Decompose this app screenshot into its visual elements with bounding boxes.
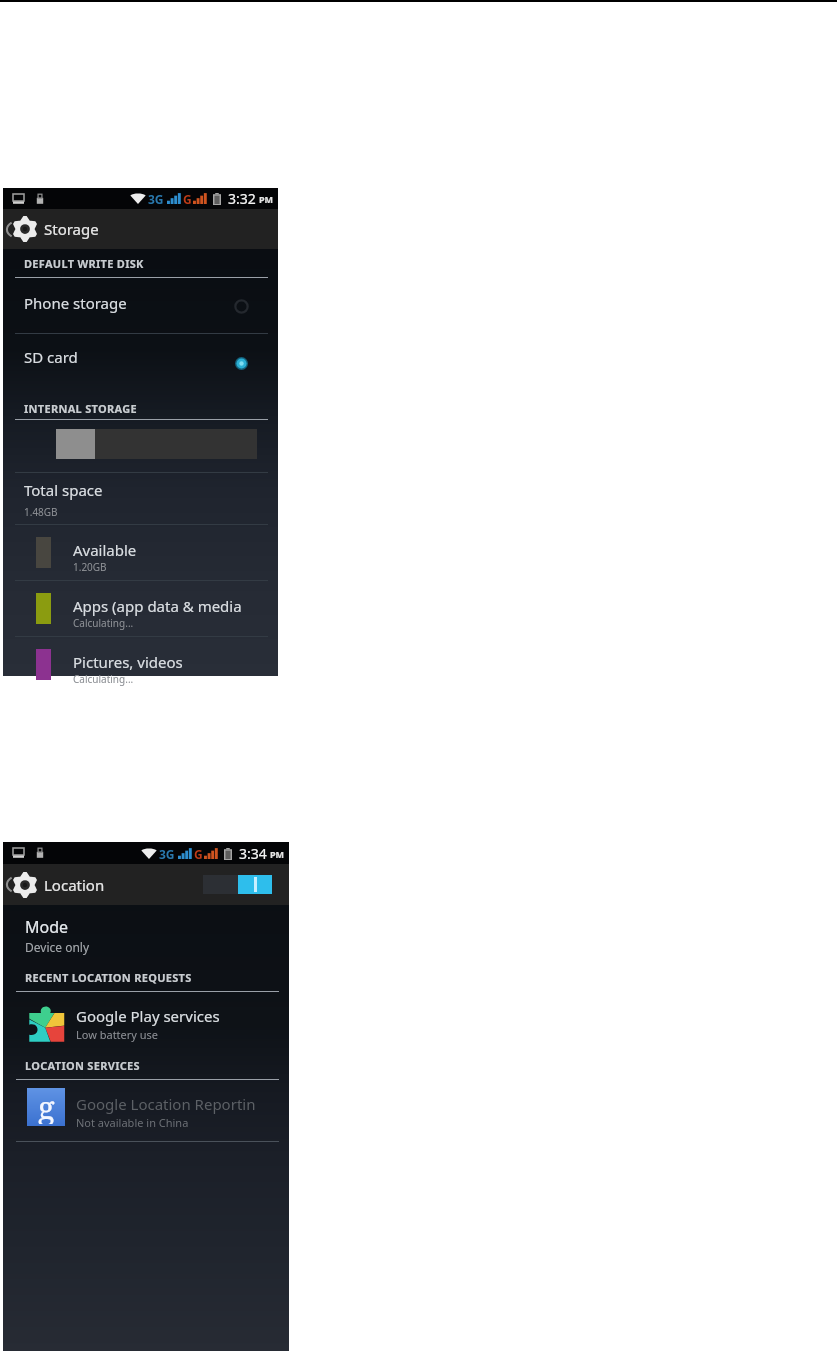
staticText: Device only bbox=[25, 939, 90, 955]
button[interactable]: Mode bbox=[3, 912, 289, 960]
staticText: LOCATION SERVICES bbox=[25, 1058, 140, 1073]
button[interactable]: Navigate up to Settings bbox=[3, 864, 44, 905]
staticText: G bbox=[183, 191, 192, 207]
staticText: Apps (app data & media bbox=[73, 596, 246, 616]
staticText: PM bbox=[270, 848, 285, 860]
staticText: g bbox=[38, 1086, 55, 1124]
staticText: Available bbox=[73, 540, 137, 560]
staticText: DEFAULT WRITE DISK bbox=[24, 256, 144, 271]
button[interactable]: Toggle location on or off bbox=[197, 868, 289, 901]
button[interactable]: Phone storage bbox=[3, 278, 278, 333]
staticText: 1.20GB bbox=[73, 560, 107, 574]
button[interactable]: Apps (app data & media bbox=[3, 581, 278, 636]
staticText: 3G bbox=[148, 191, 164, 207]
button[interactable]: g bbox=[3, 1085, 289, 1143]
staticText: Google Location Reportin bbox=[76, 1094, 256, 1114]
staticText: G bbox=[194, 846, 203, 862]
staticText: PM bbox=[259, 193, 274, 205]
button[interactable]: Pictures, videos bbox=[3, 637, 278, 692]
button[interactable]: Navigate up to Settings bbox=[3, 209, 44, 249]
staticText: 3G bbox=[159, 846, 175, 862]
staticText: 3:34 bbox=[239, 844, 267, 863]
staticText: 3:32 bbox=[228, 189, 256, 208]
button[interactable]: SD card bbox=[3, 334, 278, 387]
staticText: Calculating... bbox=[73, 616, 134, 630]
staticText: Google Play services bbox=[76, 1006, 220, 1026]
staticText: Low battery use bbox=[76, 1027, 159, 1042]
staticText: Mode bbox=[25, 916, 69, 938]
button[interactable]: Google Play services bbox=[3, 997, 289, 1055]
staticText: 1.48GB bbox=[24, 505, 58, 519]
staticText: Location bbox=[44, 875, 105, 895]
staticText: Pictures, videos bbox=[73, 652, 183, 672]
staticText: INTERNAL STORAGE bbox=[24, 401, 137, 416]
button[interactable]: Available bbox=[3, 525, 278, 580]
staticText: Not available in China bbox=[76, 1115, 189, 1130]
staticText: Storage bbox=[44, 219, 99, 239]
button[interactable]: Total space bbox=[3, 473, 278, 524]
staticText: Total space bbox=[24, 480, 103, 500]
staticText: RECENT LOCATION REQUESTS bbox=[25, 970, 192, 985]
staticText: Phone storage bbox=[24, 293, 127, 313]
staticText: SD card bbox=[24, 347, 78, 367]
staticText: Calculating... bbox=[73, 672, 134, 686]
